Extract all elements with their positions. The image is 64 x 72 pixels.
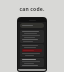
staticText: can code.: [19, 6, 45, 13]
button[interactable]: Search: [20, 23, 44, 28]
button[interactable]: Error line: [22, 49, 42, 52]
button[interactable]: can code.: [0, 6, 64, 13]
button[interactable]: [18, 69, 46, 71]
